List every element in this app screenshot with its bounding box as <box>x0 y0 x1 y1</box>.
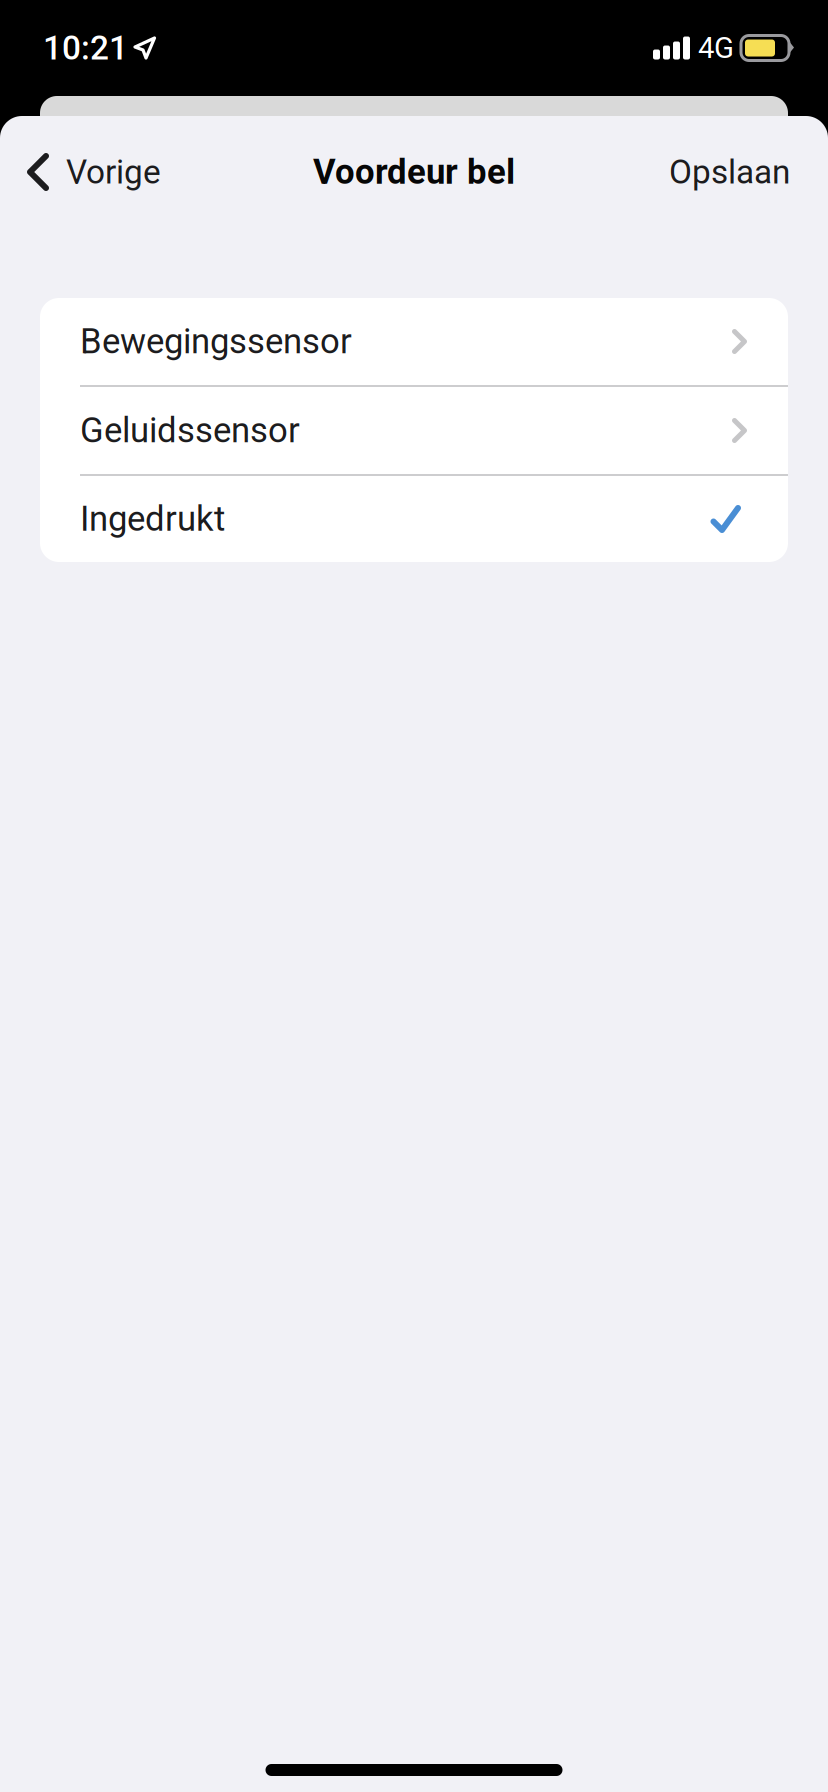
staticText: 4G <box>698 31 734 65</box>
button[interactable]: Ingedrukt <box>40 476 788 562</box>
staticText: Voordeur bel <box>313 152 515 192</box>
button[interactable]: Opslaan <box>645 116 828 228</box>
staticText: Geluidssensor <box>80 410 300 451</box>
staticText: Opslaan <box>669 152 790 192</box>
button[interactable]: Geluidssensor <box>40 387 788 474</box>
button[interactable]: Bewegingssensor <box>40 298 788 385</box>
button[interactable]: Vorige <box>0 116 185 228</box>
staticText: 10:21 <box>43 28 128 68</box>
staticText: Bewegingssensor <box>80 321 352 362</box>
staticText: Ingedrukt <box>80 499 225 539</box>
staticText: Vorige <box>66 152 161 192</box>
